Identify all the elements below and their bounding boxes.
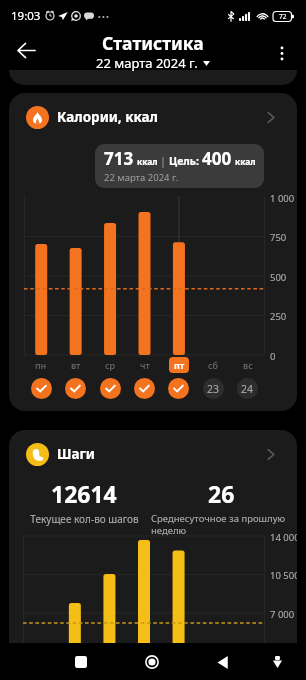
button[interactable]: Скрыть клавиатуру — [259, 644, 295, 680]
button[interactable]: пт — [169, 357, 189, 373]
staticText: 26 — [208, 478, 235, 509]
button[interactable]: 22 марта 2024 г. — [96, 54, 210, 72]
staticText: чт — [140, 359, 150, 371]
staticText: 19:03 — [11, 8, 41, 24]
button[interactable]: Главная — [134, 644, 170, 680]
button[interactable]: Последние — [63, 644, 99, 680]
button[interactable]: чт — [134, 378, 155, 399]
button[interactable]: Меню — [264, 36, 299, 71]
staticText: 12614 — [51, 478, 117, 509]
button[interactable]: вт — [66, 357, 86, 373]
staticText: 713 — [104, 147, 134, 170]
staticText: 72 — [279, 12, 287, 21]
button[interactable]: Калории, ккал — [9, 93, 297, 141]
staticText: Цель: — [169, 154, 199, 168]
staticText: ккал — [235, 156, 256, 168]
staticText: ккал — [137, 156, 158, 168]
staticText: 14 000 — [270, 531, 297, 544]
staticText: ср — [105, 359, 116, 371]
staticText: 22 марта 2024 г. — [96, 54, 198, 72]
button[interactable]: пн — [31, 357, 51, 373]
staticText: 400 — [202, 147, 232, 170]
staticText: Шаги — [57, 445, 95, 463]
button[interactable]: Шаги — [9, 430, 297, 478]
button[interactable]: пн — [31, 378, 52, 399]
staticText: Среднесуточное за прошлую неделю — [151, 512, 291, 537]
button[interactable]: Назад — [8, 32, 44, 68]
button[interactable]: вт — [65, 378, 86, 399]
staticText: вт — [71, 359, 81, 371]
staticText: 250 — [270, 310, 287, 323]
staticText: 500 — [270, 271, 287, 284]
button[interactable]: пт — [168, 378, 189, 399]
button[interactable]: сб — [203, 357, 223, 373]
staticText: 22 марта 2024 г. — [104, 171, 179, 184]
staticText: 23 — [207, 382, 220, 396]
staticText: Текущее кол-во шагов — [30, 512, 139, 526]
staticText: 0 — [270, 350, 276, 363]
button[interactable]: ср — [100, 357, 120, 373]
button[interactable]: вс — [238, 357, 258, 373]
staticText: 1 000 — [270, 192, 295, 205]
staticText: | — [160, 153, 167, 168]
button[interactable]: сб — [203, 378, 224, 399]
staticText: вс — [243, 359, 253, 371]
staticText: 750 — [270, 231, 287, 244]
button[interactable]: Назад — [204, 644, 240, 680]
staticText: Статистика — [102, 31, 204, 55]
staticText: сб — [208, 359, 218, 371]
staticText: Калории, ккал — [57, 108, 159, 126]
staticText: пт — [174, 359, 185, 371]
button[interactable]: вс — [237, 378, 258, 399]
staticText: пн — [35, 359, 47, 371]
staticText: 24 — [241, 382, 254, 396]
button[interactable]: ср — [100, 378, 121, 399]
staticText: 10 500 — [270, 569, 297, 582]
staticText: 7 000 — [270, 608, 295, 621]
button[interactable]: чт — [135, 357, 155, 373]
